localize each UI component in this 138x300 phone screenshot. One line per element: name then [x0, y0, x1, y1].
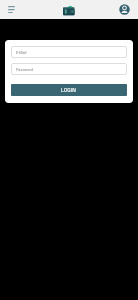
button[interactable]: Account — [115, 0, 134, 19]
button[interactable]: LOGIN — [11, 84, 127, 96]
button[interactable]: Menu — [0, 0, 23, 19]
staticText: Password — [16, 67, 33, 71]
button[interactable]: Password — [11, 63, 127, 75]
staticText: E-Mail — [16, 50, 27, 54]
staticText: LOGIN — [61, 87, 77, 93]
button[interactable]: E-Mail — [11, 46, 127, 58]
button[interactable]: Wallet logo — [61, 2, 77, 18]
